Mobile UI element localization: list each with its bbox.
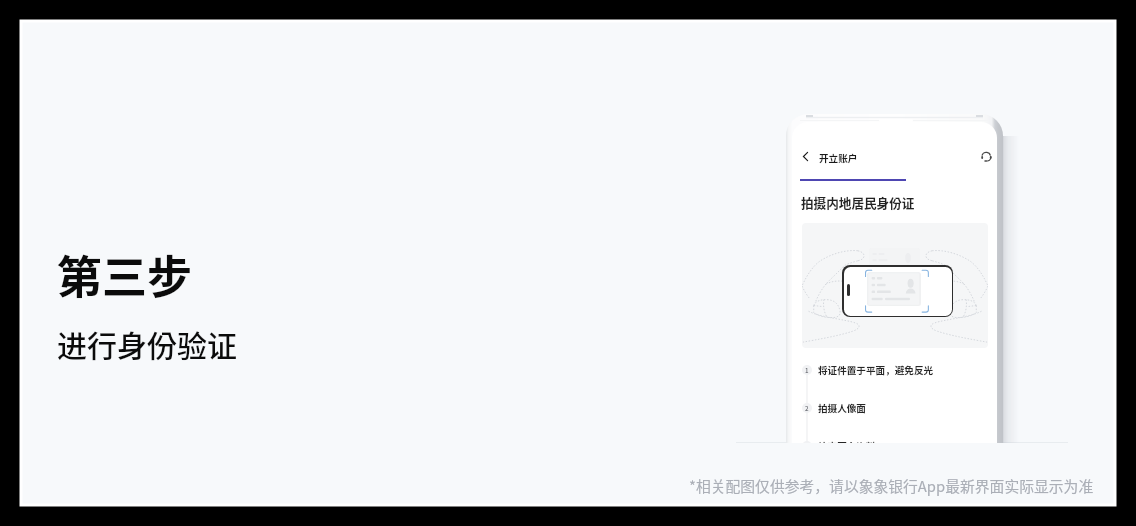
button[interactable]: 开立账户	[819, 151, 858, 165]
button[interactable]: Customer service	[978, 149, 994, 165]
staticText: 进行身份验证	[57, 322, 237, 365]
staticText: 将证件置于平面，避免反光	[818, 363, 934, 377]
button[interactable]: Back	[798, 149, 812, 163]
staticText: 拍摄人像面	[818, 401, 866, 415]
staticText: *相关配图仅供参考，请以象象银行App最新界面实际显示为准	[689, 475, 1094, 496]
staticText: 补充更多资料	[818, 439, 876, 443]
button[interactable]: 2	[802, 401, 866, 415]
staticText: 第三步	[57, 242, 193, 307]
button[interactable]: 3	[802, 439, 876, 443]
staticText: 2	[805, 404, 809, 413]
staticText: 开立账户	[819, 151, 858, 165]
button[interactable]: 1	[802, 363, 934, 377]
staticText: 拍摄内地居民身份证	[801, 193, 915, 211]
staticText: 1	[805, 366, 809, 375]
